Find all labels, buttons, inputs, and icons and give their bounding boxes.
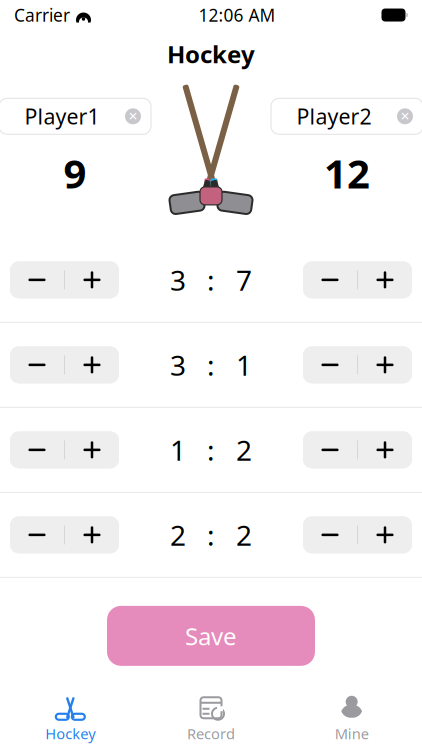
staticText: : bbox=[207, 346, 215, 383]
button[interactable]: Player2 bbox=[271, 98, 422, 134]
staticText: : bbox=[207, 431, 215, 468]
staticText: Player2 bbox=[296, 102, 371, 130]
button[interactable]: Decrease period 3 player 2 bbox=[303, 431, 357, 468]
staticText: 12 bbox=[324, 146, 370, 199]
button[interactable]: Mine bbox=[281, 688, 422, 750]
button[interactable]: Increase period 1 player 1 bbox=[65, 261, 119, 298]
staticText: ✕ bbox=[400, 109, 410, 123]
staticText: Hockey bbox=[167, 38, 255, 70]
button[interactable]: Increase period 4 player 2 bbox=[358, 516, 412, 553]
staticText: 3 bbox=[170, 261, 186, 298]
staticText: Hockey bbox=[45, 724, 95, 743]
button[interactable]: Decrease period 1 player 1 bbox=[10, 261, 64, 298]
button[interactable]: Decrease period 2 player 2 bbox=[303, 346, 357, 383]
button[interactable]: Increase period 1 player 2 bbox=[358, 261, 412, 298]
staticText: 3 bbox=[170, 346, 186, 383]
button[interactable]: Hockey bbox=[0, 688, 141, 750]
button[interactable]: Decrease period 4 player 1 bbox=[10, 516, 64, 553]
staticText: 1 bbox=[170, 431, 186, 468]
staticText: 2 bbox=[236, 516, 252, 553]
staticText: Mine bbox=[335, 724, 369, 743]
button[interactable]: Increase period 2 player 2 bbox=[358, 346, 412, 383]
button[interactable]: Save bbox=[107, 606, 315, 666]
button[interactable]: Increase period 3 player 1 bbox=[65, 431, 119, 468]
staticText: ✕ bbox=[128, 109, 138, 123]
staticText: Record bbox=[187, 724, 235, 743]
button[interactable]: Record bbox=[141, 688, 281, 750]
button[interactable]: Player1 bbox=[0, 98, 151, 134]
staticText: 1 bbox=[236, 346, 252, 383]
staticText: Carrier bbox=[14, 3, 70, 26]
staticText: 12:06 AM bbox=[198, 3, 275, 26]
staticText: Player1 bbox=[24, 102, 99, 130]
button[interactable]: Increase period 3 player 2 bbox=[358, 431, 412, 468]
staticText: : bbox=[207, 261, 215, 298]
staticText: 2 bbox=[170, 516, 186, 553]
staticText: Save bbox=[185, 620, 237, 652]
staticText: 7 bbox=[236, 261, 252, 298]
staticText: : bbox=[207, 516, 215, 553]
button[interactable]: Decrease period 1 player 2 bbox=[303, 261, 357, 298]
button[interactable]: Decrease period 3 player 1 bbox=[10, 431, 64, 468]
button[interactable]: Decrease period 2 player 1 bbox=[10, 346, 64, 383]
button[interactable]: Increase period 4 player 1 bbox=[65, 516, 119, 553]
button[interactable]: Decrease period 4 player 2 bbox=[303, 516, 357, 553]
staticText: 2 bbox=[236, 431, 252, 468]
button[interactable]: Increase period 2 player 1 bbox=[65, 346, 119, 383]
staticText: 9 bbox=[63, 146, 86, 199]
